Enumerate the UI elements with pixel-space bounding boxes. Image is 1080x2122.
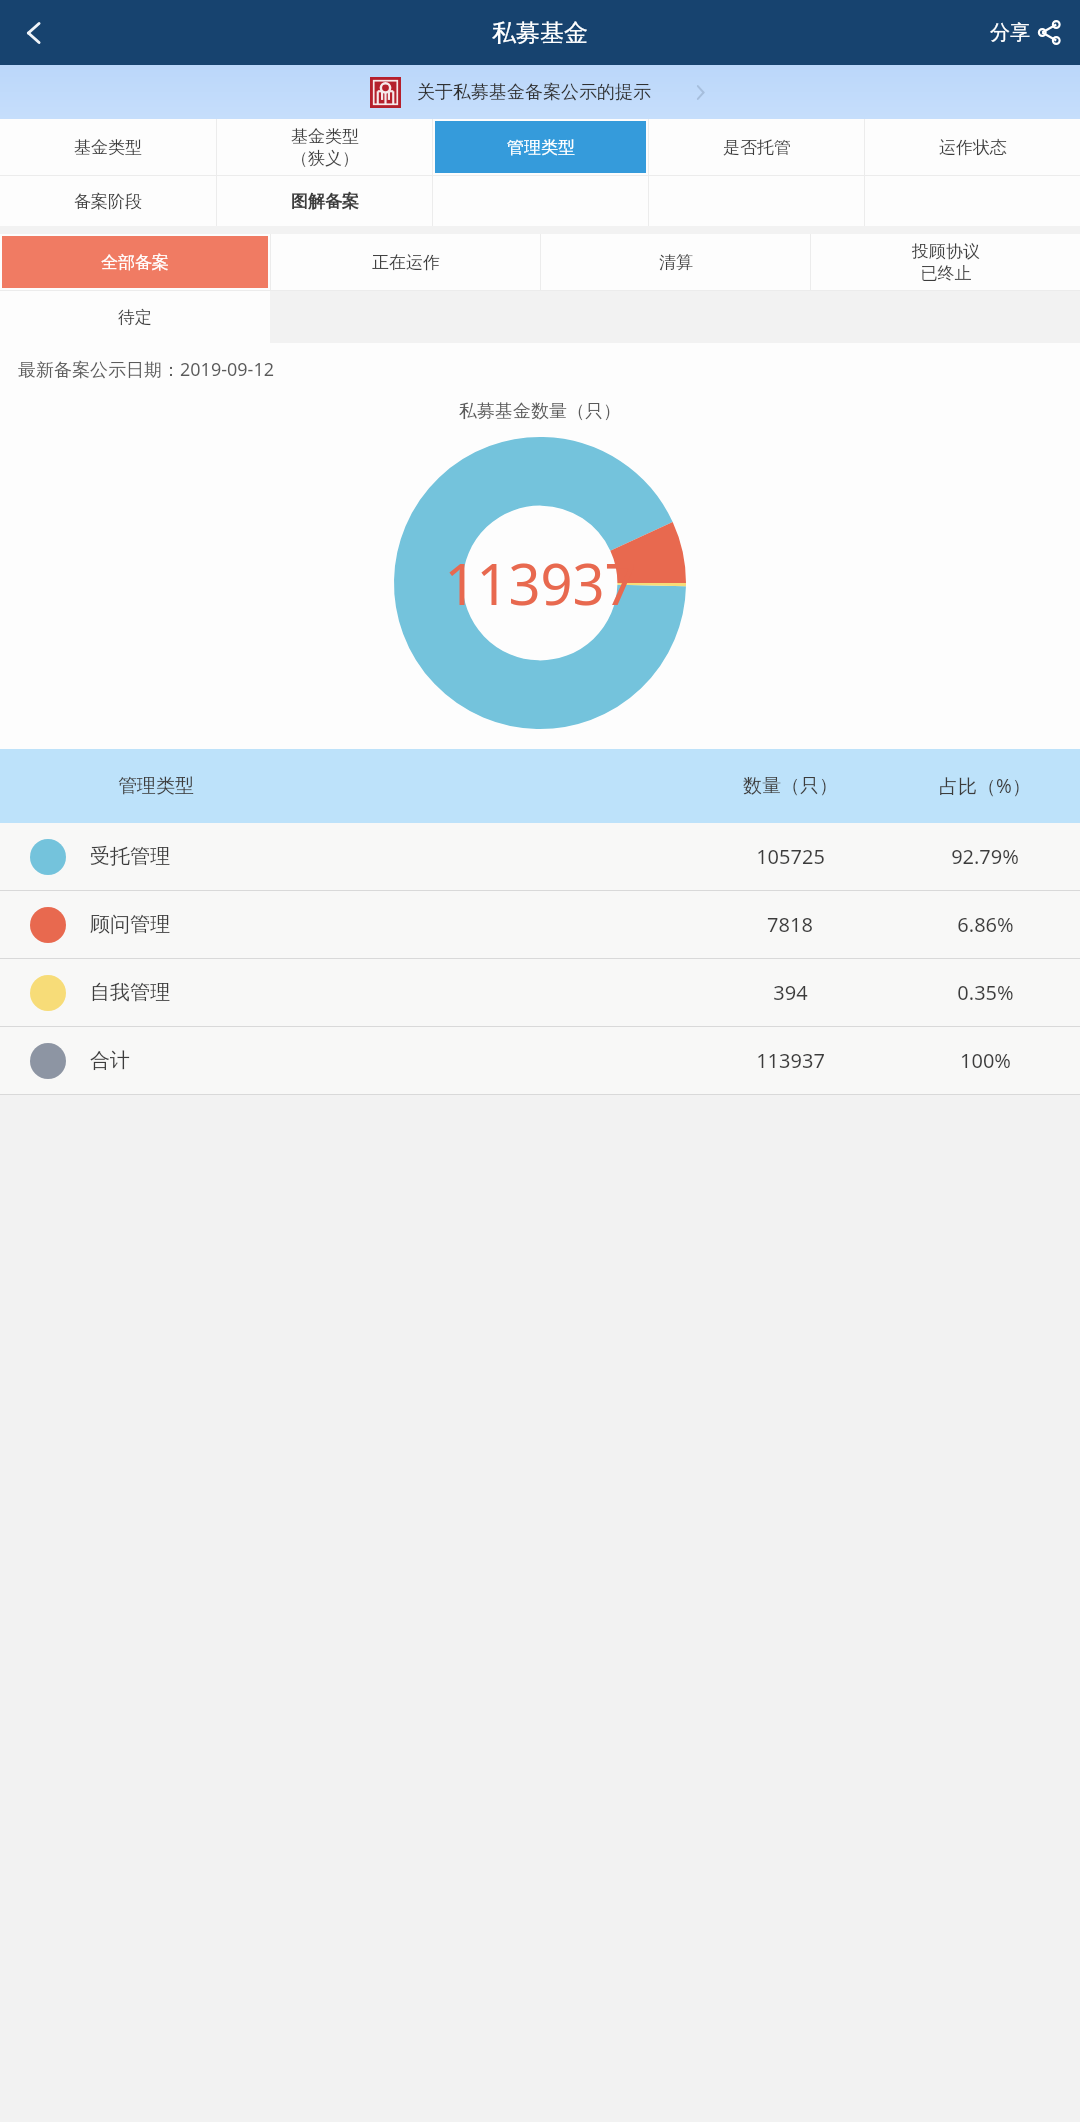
staticText: 正在运作	[372, 252, 440, 273]
staticText: 数量（只）	[743, 774, 838, 798]
staticText: 私募基金	[492, 18, 588, 48]
staticText: 7818	[767, 911, 813, 938]
staticText: 图解备案	[291, 191, 359, 212]
button[interactable]: 待定	[0, 291, 270, 343]
button[interactable]: 清算	[541, 234, 810, 290]
staticText: 基金类型 （狭义）	[291, 126, 359, 169]
button[interactable]: 合计	[0, 1027, 1080, 1094]
staticText: 是否托管	[723, 137, 791, 158]
staticText: 105725	[756, 843, 825, 870]
staticText: 待定	[118, 307, 152, 328]
staticText: 合计	[90, 1048, 130, 1073]
button[interactable]: 管理类型	[435, 121, 646, 173]
staticText: 394	[773, 979, 808, 1006]
button[interactable]: 基金类型 （狭义）	[217, 119, 432, 175]
button[interactable]: 关于私募基金备案公示的提示	[0, 65, 1080, 119]
staticText: 92.79%	[951, 843, 1019, 870]
staticText: 100%	[960, 1047, 1011, 1074]
staticText: 占比（%）	[939, 773, 1031, 799]
staticText: 受托管理	[90, 844, 170, 869]
button[interactable]: 受托管理	[0, 823, 1080, 890]
staticText: 投顾协议 已终止	[912, 241, 980, 284]
staticText: 113937	[756, 1047, 825, 1074]
staticText: 全部备案	[101, 252, 169, 273]
button[interactable]: 基金类型	[0, 119, 216, 175]
button[interactable]: 顾问管理	[0, 891, 1080, 958]
staticText: 备案阶段	[74, 191, 142, 212]
button[interactable]: 正在运作	[271, 234, 540, 290]
staticText: 私募基金数量（只）	[459, 400, 621, 423]
staticText: 清算	[659, 252, 693, 273]
staticText: 运作状态	[939, 137, 1007, 158]
staticText: 关于私募基金备案公示的提示	[417, 81, 651, 104]
button[interactable]: 图解备案	[217, 176, 432, 226]
staticText: 顾问管理	[90, 912, 170, 937]
button[interactable]: 投顾协议 已终止	[811, 234, 1080, 290]
staticText: 分享	[990, 20, 1030, 45]
staticText: 0.35%	[957, 979, 1014, 1006]
staticText: 管理类型	[507, 137, 575, 158]
button[interactable]: 是否托管	[649, 119, 864, 175]
staticText: 管理类型	[118, 774, 194, 798]
button[interactable]: 自我管理	[0, 959, 1080, 1026]
staticText: 113937	[444, 545, 637, 621]
staticText: 自我管理	[90, 980, 170, 1005]
button[interactable]: 运作状态	[865, 119, 1080, 175]
staticText: 基金类型	[74, 137, 142, 158]
button[interactable]: 全部备案	[2, 236, 268, 288]
staticText: 6.86%	[957, 911, 1014, 938]
button[interactable]: 分享	[986, 12, 1066, 53]
button[interactable]: 返回	[6, 5, 62, 61]
staticText: 最新备案公示日期：2019-09-12	[18, 357, 274, 382]
button[interactable]: 备案阶段	[0, 176, 216, 226]
